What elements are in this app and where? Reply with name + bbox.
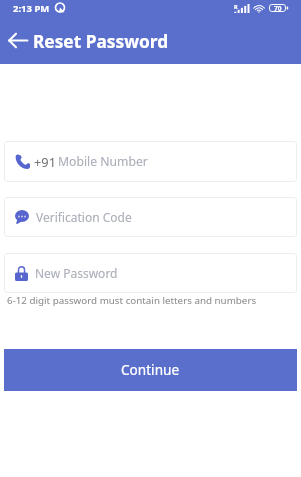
staticText: 6-12 digit password must contain letters… [7,294,257,307]
staticText: Continue [121,360,180,379]
button[interactable]: Back [3,25,33,55]
staticText: R [234,3,238,10]
button[interactable]: New Password [4,253,297,293]
staticText: Reset Password [33,30,169,54]
button[interactable]: Verification Code [4,197,297,237]
staticText: +91 [34,153,56,170]
staticText: Verification Code [36,209,132,225]
button[interactable]: Continue [4,349,297,391]
staticText: 70 [274,4,282,12]
staticText: New Password [35,265,118,281]
button[interactable]: +91 [4,141,297,182]
staticText: 2:13 PM [13,2,50,15]
staticText: Mobile Number [58,153,148,170]
